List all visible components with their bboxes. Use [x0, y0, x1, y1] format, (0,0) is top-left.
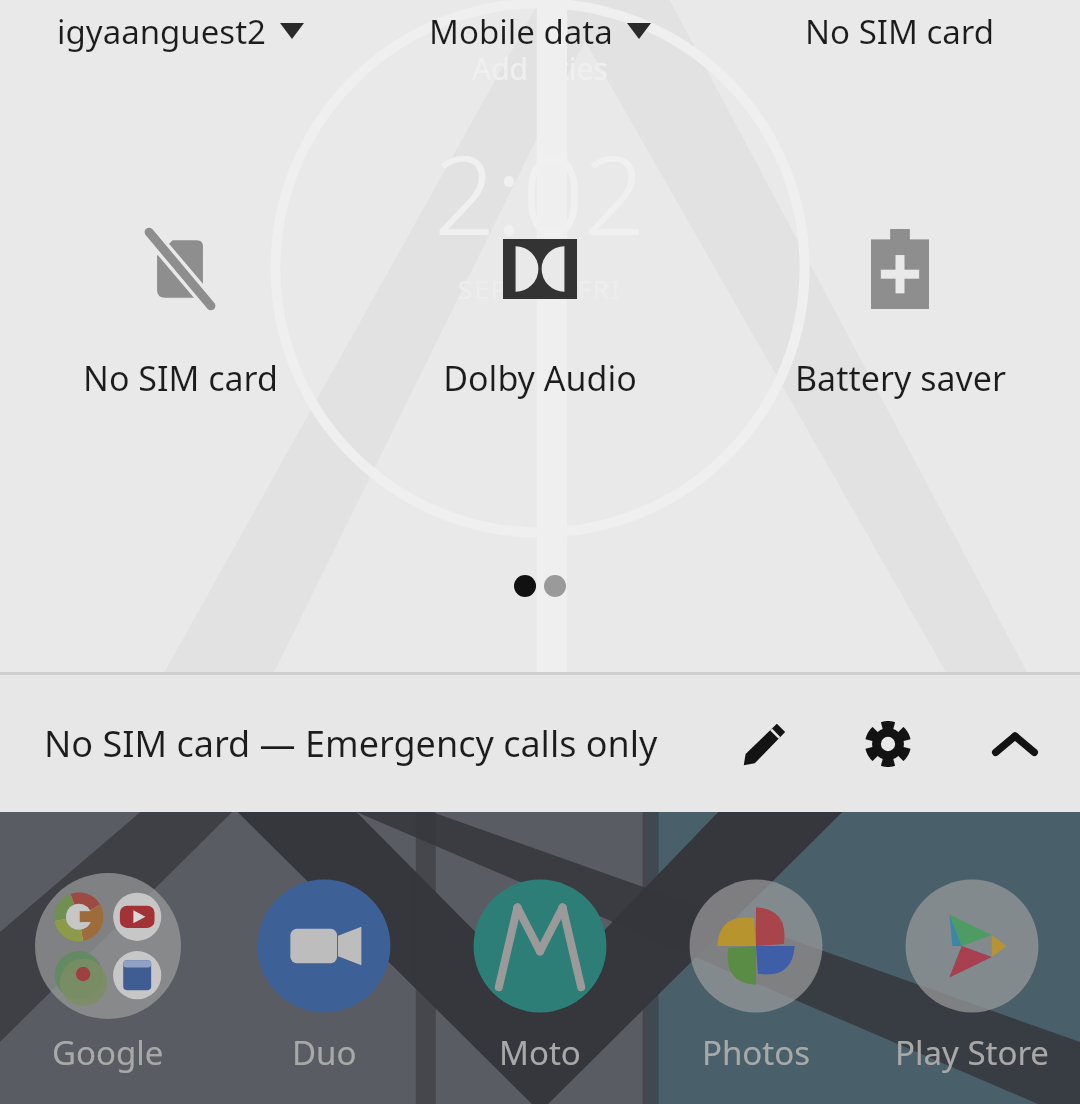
button[interactable]: Battery saver [720, 215, 1080, 407]
staticText: Photos [702, 1030, 811, 1075]
button[interactable]: No SIM card — Emergency calls only [0, 675, 702, 812]
button[interactable]: Play Store [864, 872, 1080, 1075]
staticText: 2:02 [434, 120, 646, 267]
button[interactable]: Edit [702, 675, 826, 812]
button[interactable]: No SIM card [0, 215, 360, 407]
button[interactable]: No SIM card [720, 0, 1080, 62]
staticText: Moto [499, 1030, 581, 1075]
staticText: Battery saver [795, 355, 1006, 401]
staticText: igyaanguest2 [57, 9, 266, 54]
staticText: Mobile data [429, 9, 613, 54]
button[interactable]: Dolby Audio [360, 215, 720, 407]
button[interactable]: Google [0, 872, 216, 1075]
staticText: Dolby Audio [443, 355, 637, 401]
staticText: Duo [292, 1030, 357, 1075]
button[interactable]: igyaanguest2 [0, 0, 360, 62]
button[interactable]: Moto [432, 872, 648, 1075]
staticText: Play Store [895, 1030, 1049, 1075]
button[interactable]: Duo [216, 872, 432, 1075]
button[interactable]: Collapse [950, 675, 1080, 812]
button[interactable]: Settings [826, 675, 950, 812]
staticText: No SIM card — Emergency calls only [44, 719, 658, 768]
staticText: No SIM card [83, 355, 278, 401]
staticText: Google [52, 1030, 164, 1075]
staticText: Add cities [472, 48, 608, 89]
button[interactable]: Photos [648, 872, 864, 1075]
staticText: SEP 28 FRI [458, 271, 622, 306]
button[interactable]: Mobile data [360, 0, 720, 62]
staticText: No SIM card [805, 9, 995, 54]
